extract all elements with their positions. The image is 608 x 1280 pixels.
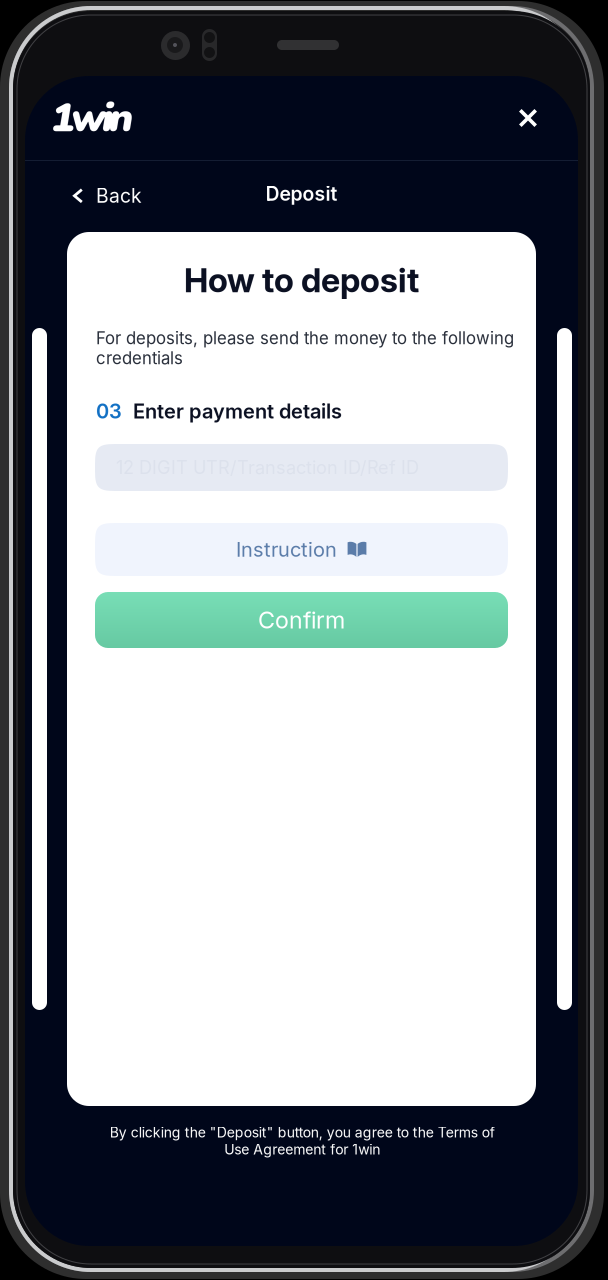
button[interactable]: Back <box>25 172 158 219</box>
staticText: Back <box>96 184 142 207</box>
staticText: 03 <box>96 399 122 423</box>
staticText: Deposit <box>265 182 337 205</box>
staticText: Enter payment details <box>133 399 342 423</box>
staticText: For deposits, please send the money to t… <box>96 328 514 368</box>
button[interactable]: Instruction <box>95 523 508 576</box>
staticText: Instruction <box>236 537 337 562</box>
button[interactable]: Close <box>505 95 551 141</box>
button[interactable]: Confirm <box>95 592 508 648</box>
staticText: By clicking the "Deposit" button, you ag… <box>109 1124 494 1158</box>
staticText: Confirm <box>258 606 345 634</box>
staticText: 1win <box>51 91 133 145</box>
staticText: How to deposit <box>184 260 419 300</box>
staticText: 12 DIGIT UTR/Transaction ID/Ref ID <box>116 456 419 478</box>
